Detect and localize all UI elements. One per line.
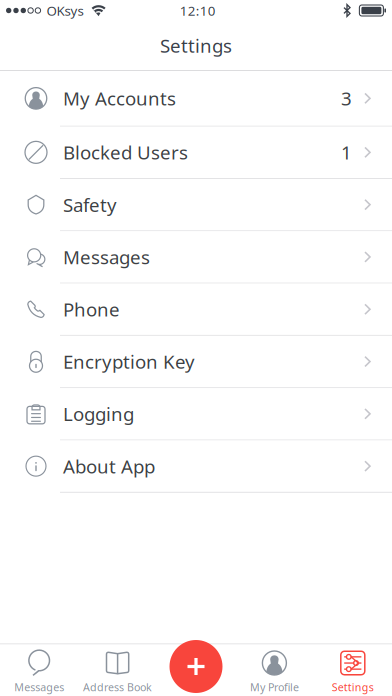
button[interactable]: Safety [0, 179, 392, 231]
staticText: Messages [14, 680, 64, 694]
staticText: About App [63, 454, 155, 479]
staticText: Blocked Users [63, 140, 188, 165]
button[interactable]: My Profile [235, 644, 314, 696]
staticText: Encryption Key [63, 349, 195, 374]
staticText: 3 [341, 86, 352, 111]
staticText: 12:10 [180, 2, 216, 19]
button[interactable]: Messages [0, 644, 78, 696]
staticText: Logging [63, 401, 134, 426]
staticText: 1 [341, 140, 352, 165]
button[interactable]: Messages [0, 231, 392, 284]
button[interactable]: New [169, 640, 222, 693]
staticText: Settings [160, 33, 232, 58]
button[interactable]: My Accounts [0, 71, 392, 127]
button[interactable]: Phone [0, 284, 392, 336]
button[interactable]: Logging [0, 388, 392, 440]
button[interactable]: Encryption Key [0, 336, 392, 388]
staticText: Settings [332, 680, 374, 694]
staticText: Address Book [83, 680, 152, 694]
staticText: Safety [63, 192, 117, 217]
staticText: Phone [63, 297, 120, 322]
staticText: OKsys [47, 2, 84, 19]
button[interactable]: About App [0, 440, 392, 493]
staticText: Messages [63, 245, 150, 269]
staticText: My Accounts [63, 86, 176, 111]
button[interactable]: Settings [314, 644, 392, 696]
button[interactable]: Blocked Users [0, 127, 392, 179]
staticText: My Profile [250, 680, 299, 694]
button[interactable]: Address Book [78, 644, 157, 696]
